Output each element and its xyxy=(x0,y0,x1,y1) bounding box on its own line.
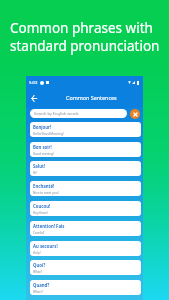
staticText: Nice to meet you! xyxy=(33,191,59,195)
staticText: Quand? xyxy=(33,282,50,288)
staticText: Salut! xyxy=(33,163,46,169)
staticText: Bon soir! xyxy=(33,144,52,150)
staticText: 5:03 xyxy=(29,80,38,86)
staticText: Bonjour! xyxy=(33,124,52,130)
staticText: Common Sentences xyxy=(66,94,117,101)
staticText: Enchanté! xyxy=(33,183,55,189)
button[interactable]: Au secours! xyxy=(30,241,141,256)
button[interactable]: Bon soir! xyxy=(30,142,141,157)
button[interactable]: Search by English words xyxy=(30,109,127,118)
staticText: Hey there! xyxy=(33,211,48,215)
staticText: Attention! Fais xyxy=(33,223,65,229)
staticText: Au secours! xyxy=(33,243,58,249)
staticText: standard pronunciation xyxy=(10,37,160,55)
button[interactable]: Bonjour! xyxy=(30,122,141,137)
button[interactable]: Attention! Fais xyxy=(30,221,141,236)
staticText: Hello/Good Morning! xyxy=(33,132,64,136)
staticText: Coucou! xyxy=(33,203,51,209)
button[interactable]: Quoi? xyxy=(30,260,141,275)
button[interactable]: Coucou! xyxy=(30,201,141,216)
staticText: Careful! xyxy=(33,231,45,235)
staticText: Search by English words xyxy=(34,111,79,116)
button[interactable]: Salut! xyxy=(30,161,141,176)
staticText: When? xyxy=(33,290,43,294)
staticText: What? xyxy=(33,270,42,274)
staticText: Good evening! xyxy=(33,152,55,156)
staticText: Common phrases with xyxy=(10,19,153,37)
staticText: Hi! xyxy=(33,171,37,175)
staticText: Quoi? xyxy=(33,262,46,268)
button[interactable]: Back xyxy=(26,90,42,106)
staticText: Help! xyxy=(33,251,41,255)
button[interactable]: Quand? xyxy=(30,280,141,295)
button[interactable]: Enchanté! xyxy=(30,181,141,196)
button[interactable]: Clear search xyxy=(130,109,140,119)
